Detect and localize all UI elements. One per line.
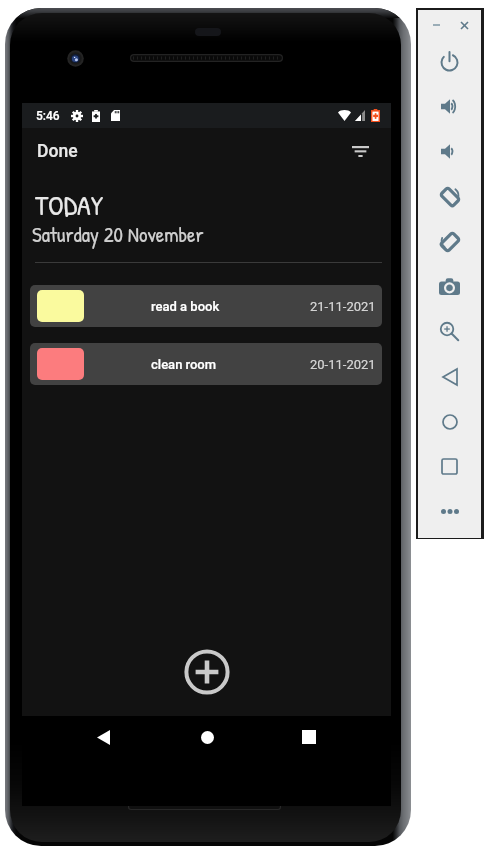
button[interactable]: Screenshot — [418, 264, 481, 309]
staticText: clean room — [151, 357, 217, 372]
button[interactable]: Volume up — [418, 84, 481, 129]
button[interactable]: Back — [418, 354, 481, 399]
button[interactable]: Home — [185, 715, 229, 759]
button[interactable]: Recents — [287, 715, 331, 759]
button[interactable]: Rotate right — [418, 219, 481, 264]
button[interactable]: Done — [37, 141, 78, 162]
button[interactable]: Rotate left — [418, 174, 481, 219]
button[interactable]: Back — [81, 715, 125, 759]
staticText: 21-11-2021 — [310, 299, 376, 314]
button[interactable]: Overview — [418, 444, 481, 489]
staticText: TODAY — [35, 186, 104, 224]
staticText: read a book — [151, 299, 220, 314]
button[interactable]: Close — [454, 15, 474, 35]
button[interactable]: read a book — [30, 285, 382, 327]
staticText: Saturday 20 November — [32, 220, 204, 248]
staticText: 5:46 — [36, 109, 60, 123]
button[interactable]: clean room — [30, 343, 382, 385]
button[interactable]: Zoom — [418, 309, 481, 354]
button[interactable]: Home — [418, 399, 481, 444]
button[interactable]: Add task — [182, 647, 232, 697]
button[interactable]: Filter — [339, 131, 381, 173]
button[interactable]: Power — [418, 39, 481, 84]
staticText: 20-11-2021 — [310, 357, 376, 372]
button[interactable]: Minimize — [426, 15, 446, 35]
button[interactable]: Volume down — [418, 129, 481, 174]
button[interactable]: More — [418, 489, 481, 534]
